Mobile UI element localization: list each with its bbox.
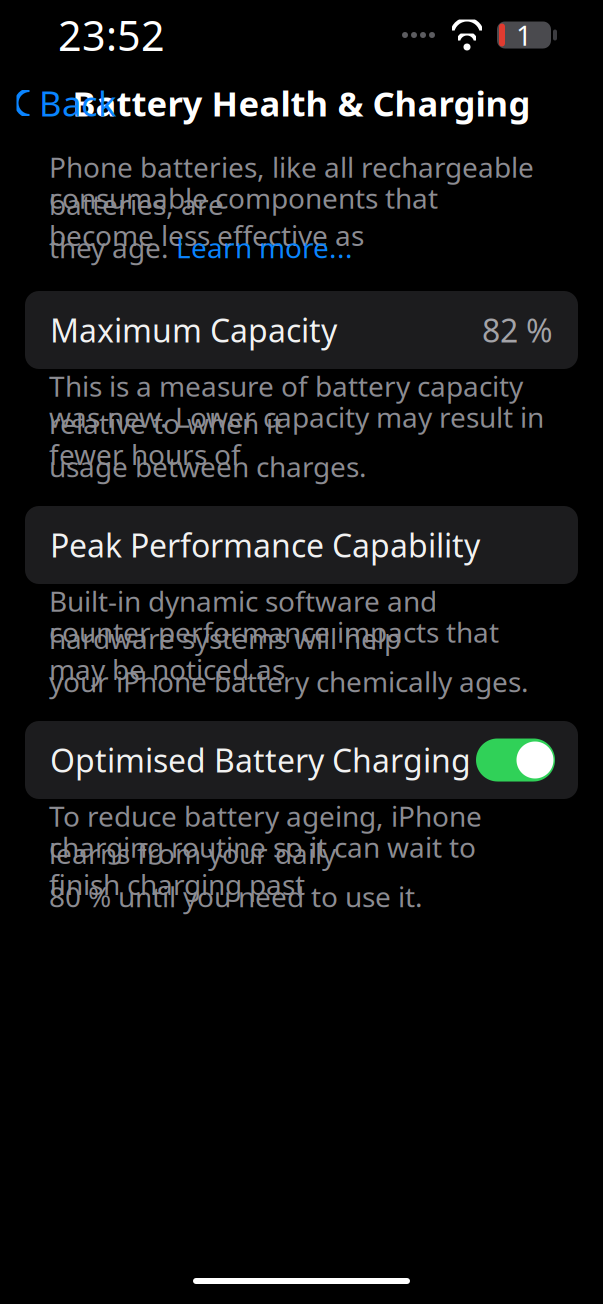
staticText: This is a measure of battery capacity re… [49, 367, 523, 442]
staticText: Back [39, 80, 117, 126]
staticText: counter performance impacts that may be … [49, 613, 499, 688]
staticText: usage between charges. [49, 448, 367, 485]
staticText: 82 % [482, 309, 553, 351]
button[interactable]: Learn more... [176, 229, 353, 266]
staticText: Battery Health & Charging [72, 80, 530, 126]
staticText: Built-in dynamic software and hardware s… [49, 582, 437, 657]
staticText: Learn more... [176, 229, 353, 266]
staticText: To reduce battery ageing, iPhone learns … [49, 797, 482, 872]
staticText: consumable components that become less e… [49, 179, 438, 254]
staticText: was new. Lower capacity may result in fe… [49, 398, 544, 473]
staticText: 80 % until you need to use it. [49, 878, 423, 915]
button[interactable]: Optimised Battery Charging [476, 738, 555, 781]
staticText: Peak Performance Capability [50, 524, 480, 566]
button[interactable]: Back [0, 74, 129, 132]
button[interactable]: Peak Performance Capability [25, 506, 578, 584]
button[interactable]: Maximum Capacity [25, 291, 578, 369]
staticText: charging routine so it can wait to finis… [49, 828, 476, 903]
staticText: they age. [49, 229, 176, 266]
staticText: Optimised Battery Charging [50, 739, 471, 781]
staticText: 1 [516, 16, 532, 54]
staticText: 23:52 [58, 8, 165, 62]
staticText: your iPhone battery chemically ages. [49, 663, 529, 700]
staticText: Maximum Capacity [50, 309, 337, 351]
staticText: Phone batteries, like all rechargeable b… [49, 148, 534, 223]
